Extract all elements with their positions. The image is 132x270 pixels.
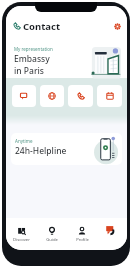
staticText: Embassy — [14, 53, 50, 65]
button[interactable]: My representation — [6, 42, 127, 78]
button[interactable]: Guide — [37, 222, 67, 248]
staticText: Anytime — [15, 138, 33, 144]
button[interactable]: Call — [68, 85, 93, 107]
staticText: Discover — [13, 237, 30, 243]
button[interactable]: Settings — [111, 20, 123, 32]
staticText: My representation — [14, 46, 53, 52]
staticText: Contact — [23, 20, 61, 33]
staticText: 24h-Helpline — [15, 145, 67, 157]
button[interactable]: Appointment — [97, 85, 122, 107]
staticText: in Paris — [14, 65, 44, 77]
staticText: Profile — [76, 237, 89, 243]
button[interactable]: Contact us — [102, 222, 120, 239]
button[interactable]: Message — [12, 85, 36, 107]
button[interactable]: Profile — [67, 222, 97, 248]
staticText: Guide — [46, 237, 58, 243]
button[interactable]: Anytime — [11, 133, 122, 165]
button[interactable]: Discover — [6, 222, 37, 248]
button[interactable]: Website — [40, 85, 64, 107]
